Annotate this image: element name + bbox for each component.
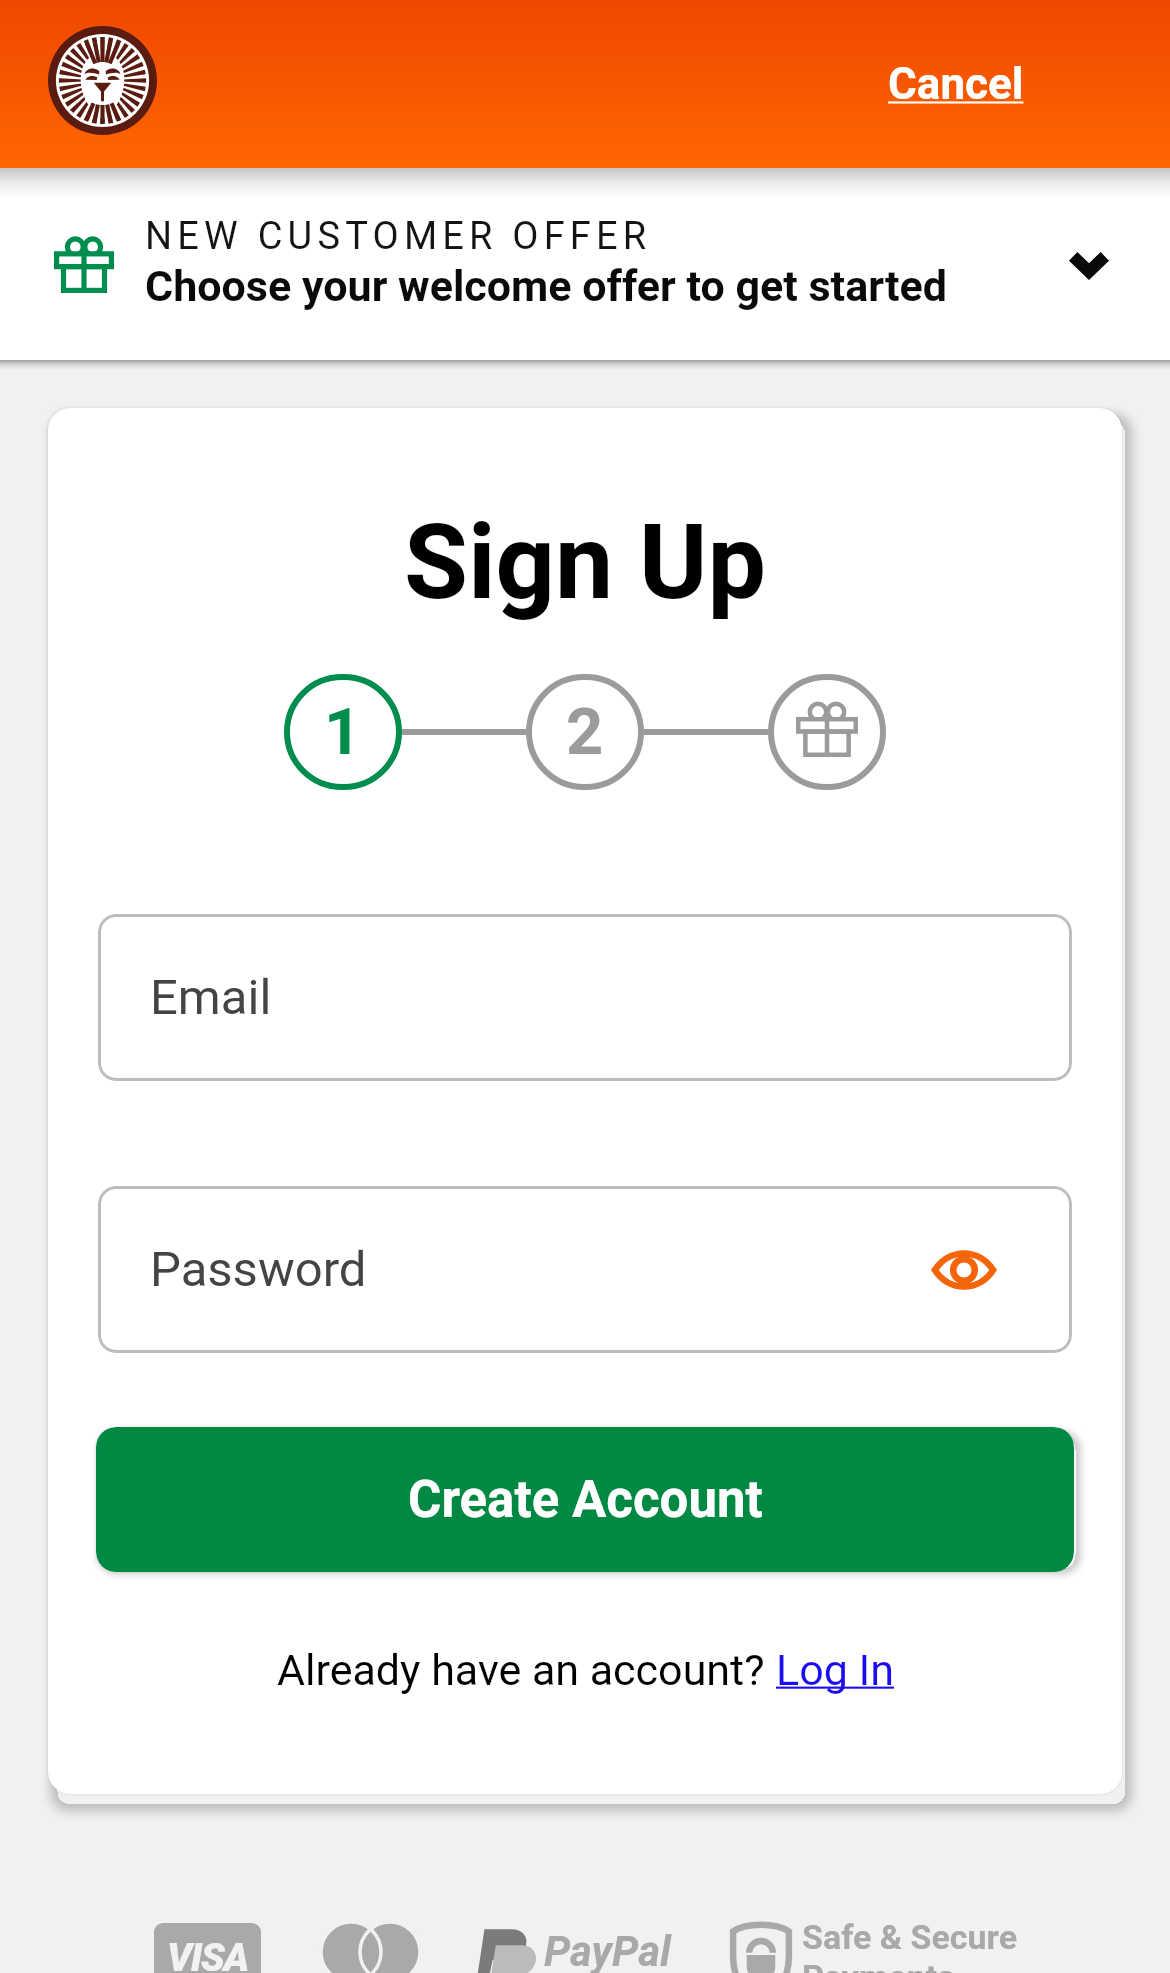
button[interactable]: Show password <box>916 1222 1012 1318</box>
staticText: Payments <box>802 1957 955 1973</box>
staticText: NEW CUSTOMER OFFER <box>145 214 652 259</box>
staticText: Password <box>150 1241 367 1298</box>
staticText: 2 <box>566 694 604 770</box>
button[interactable]: Log In <box>776 1645 894 1695</box>
staticText: Sign Up <box>48 502 1122 624</box>
staticText: Already have an account? <box>277 1645 776 1695</box>
button[interactable]: 2 <box>526 674 644 790</box>
staticText: Choose your welcome offer to get started <box>145 261 947 311</box>
staticText: Safe & Secure <box>802 1917 1018 1957</box>
button[interactable]: Home <box>48 26 157 135</box>
button[interactable]: Cancel <box>888 58 1024 110</box>
staticText: Log In <box>776 1645 894 1695</box>
staticText: Cancel <box>888 58 1024 110</box>
button[interactable]: NEW CUSTOMER OFFER <box>0 168 1170 360</box>
button[interactable]: Expand offer <box>1036 211 1142 317</box>
button[interactable]: Create Account <box>96 1427 1074 1572</box>
button[interactable] <box>768 674 886 790</box>
staticText: Create Account <box>408 1470 763 1530</box>
button[interactable]: 1 <box>284 674 402 790</box>
button[interactable]: Password <box>98 1186 1072 1353</box>
staticText: Email <box>150 969 272 1026</box>
staticText: PayPal <box>544 1927 671 1973</box>
button[interactable]: Email <box>98 914 1072 1081</box>
staticText: 1 <box>324 694 362 770</box>
staticText: VISA <box>167 1935 249 1973</box>
